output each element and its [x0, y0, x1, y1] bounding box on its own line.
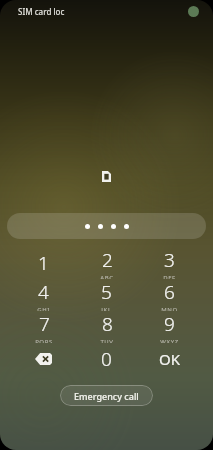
- staticText: 4: [38, 279, 49, 305]
- staticText: 6: [164, 279, 175, 305]
- staticText: PQRS: [35, 338, 53, 343]
- staticText: Emergency call: [74, 390, 139, 402]
- staticText: JKL: [101, 306, 112, 311]
- button[interactable]: 5: [75, 279, 138, 311]
- staticText: 8: [102, 311, 113, 337]
- button[interactable]: 8: [75, 311, 138, 343]
- button[interactable]: 6: [138, 279, 201, 311]
- staticText: 9: [164, 311, 175, 337]
- staticText: WXYZ: [160, 338, 179, 343]
- button[interactable]: OK: [138, 343, 201, 375]
- staticText: SIM card loc: [18, 6, 65, 17]
- button[interactable]: 4: [12, 279, 75, 311]
- button[interactable]: Emergency call: [60, 385, 153, 406]
- staticText: OK: [159, 349, 181, 369]
- button[interactable]: 0: [75, 343, 138, 375]
- staticText: 1: [38, 250, 49, 276]
- staticText: GHI: [37, 306, 50, 311]
- staticText: ABC: [100, 274, 114, 279]
- staticText: 5: [101, 279, 112, 305]
- button[interactable]: 9: [138, 311, 201, 343]
- staticText: DEF: [163, 274, 176, 279]
- staticText: 2: [102, 247, 113, 273]
- staticText: 3: [164, 247, 175, 273]
- button[interactable]: 7: [12, 311, 75, 343]
- button[interactable]: 1: [12, 247, 75, 279]
- staticText: MNO: [161, 306, 178, 311]
- button[interactable]: Backspace: [12, 343, 75, 375]
- button[interactable]: [7, 213, 206, 239]
- staticText: TUV: [100, 338, 114, 343]
- button[interactable]: 3: [138, 247, 201, 279]
- staticText: 0: [101, 346, 112, 372]
- staticText: 7: [39, 311, 50, 337]
- button[interactable]: 2: [75, 247, 138, 279]
